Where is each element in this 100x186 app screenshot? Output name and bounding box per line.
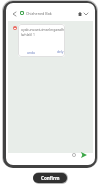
button[interactable] bbox=[81, 152, 87, 158]
button[interactable]: oyakunsxwiuimsekngawdhxs bbox=[18, 24, 65, 57]
staticText: Chizhened Bok bbox=[26, 11, 52, 16]
staticText: Confirm bbox=[41, 175, 60, 181]
button[interactable] bbox=[20, 11, 24, 15]
button[interactable]: anda bbox=[27, 50, 35, 55]
staticText: lwhlalil 1 bbox=[21, 32, 35, 37]
staticText: dely bbox=[57, 49, 64, 54]
button[interactable]: Chizhened Bok bbox=[26, 11, 52, 16]
button[interactable]: dely bbox=[57, 49, 64, 54]
button[interactable] bbox=[78, 12, 82, 16]
button[interactable] bbox=[72, 153, 76, 157]
button[interactable] bbox=[84, 13, 88, 15]
staticText: anda bbox=[27, 50, 35, 55]
staticText: oyakunsxwiuimsekngawdhxs bbox=[21, 27, 65, 32]
button[interactable]: Confirm bbox=[33, 173, 67, 183]
